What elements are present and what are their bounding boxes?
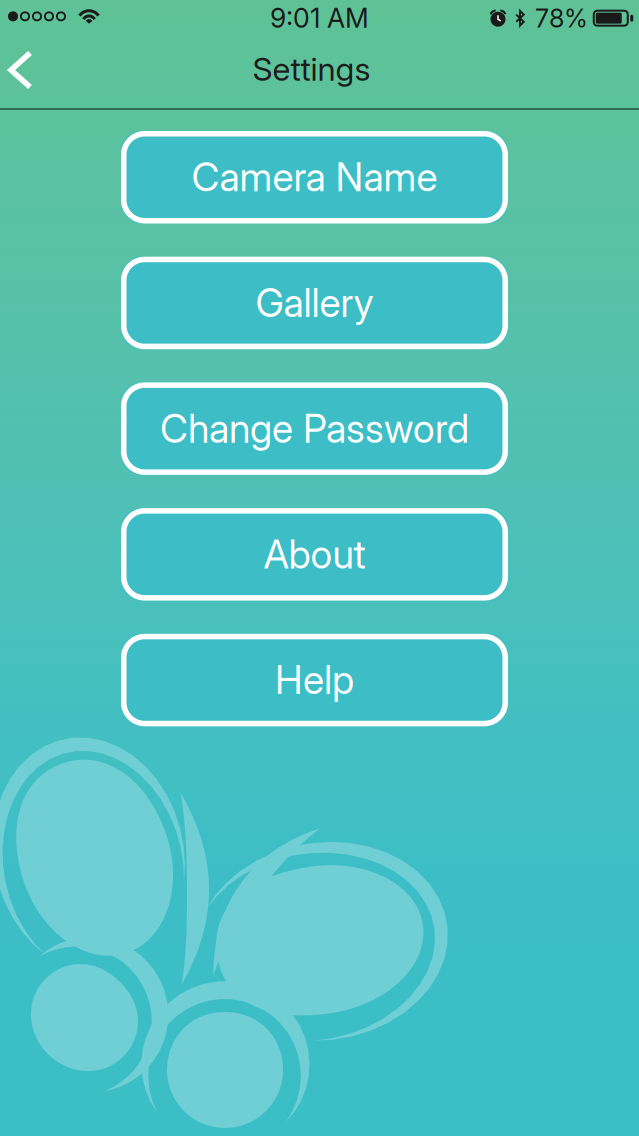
button[interactable]: Help (121, 634, 508, 726)
button[interactable]: Camera Name (121, 131, 508, 223)
staticText: Gallery (255, 280, 373, 326)
staticText: 9:01 AM (270, 2, 369, 34)
staticText: About (263, 531, 365, 578)
staticText: 78% (535, 3, 588, 34)
button[interactable]: Change Password (121, 382, 508, 475)
button[interactable]: Back (0, 41, 49, 107)
staticText: Camera Name (191, 154, 437, 201)
staticText: Change Password (160, 405, 469, 452)
staticText: Help (275, 657, 354, 703)
button[interactable]: About (121, 508, 508, 601)
button[interactable]: Gallery (121, 257, 508, 349)
staticText: Settings (252, 50, 370, 88)
